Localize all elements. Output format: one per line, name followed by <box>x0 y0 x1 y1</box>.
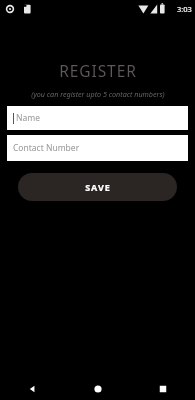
button[interactable]: SAVE <box>18 173 177 201</box>
button[interactable]: Recent apps <box>130 378 195 400</box>
staticText: Name <box>16 112 40 124</box>
staticText: REGISTER <box>59 60 137 81</box>
staticText: (you can register upto 5 contact numbers… <box>31 89 165 99</box>
button[interactable]: Name <box>7 106 188 130</box>
staticText: Contact Number <box>13 142 80 154</box>
button[interactable]: Home <box>65 378 130 400</box>
button[interactable]: Back <box>0 378 65 400</box>
staticText: 3:03 <box>177 4 192 14</box>
staticText: SAVE <box>85 181 111 193</box>
button[interactable]: Contact Number <box>7 135 188 161</box>
